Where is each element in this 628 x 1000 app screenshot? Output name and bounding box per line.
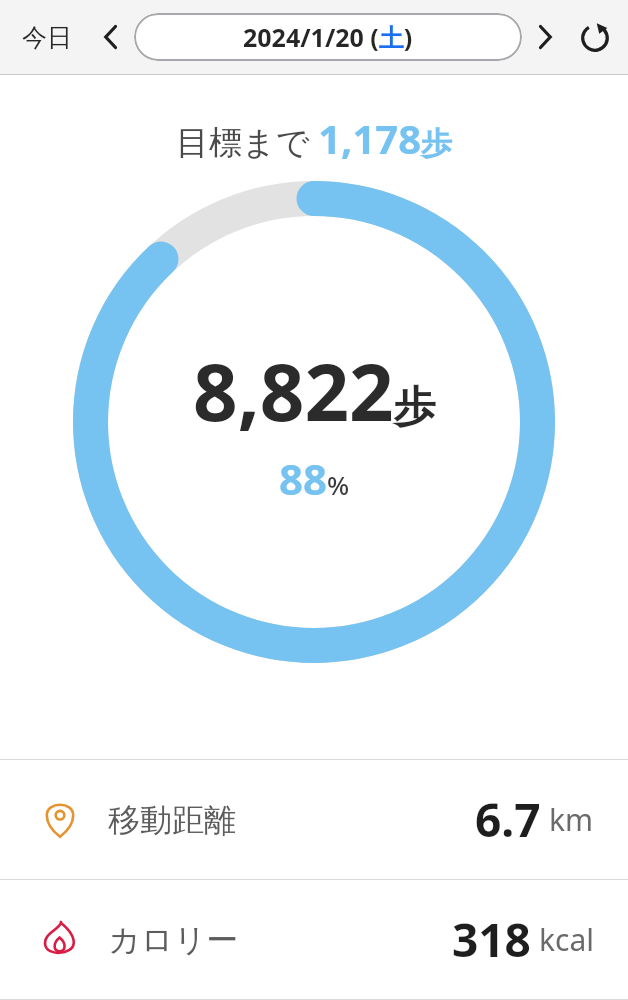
button[interactable]: 移動距離: [0, 760, 628, 879]
staticText: 移動距離: [108, 800, 236, 840]
button[interactable]: カロリー: [0, 880, 628, 999]
staticText: 2024/1/20 (土): [243, 20, 413, 54]
button[interactable]: 前の日: [90, 16, 132, 58]
staticText: 8,822歩: [193, 338, 436, 444]
staticText: 88%: [279, 450, 350, 507]
staticText: カロリー: [108, 920, 239, 960]
staticText: 6.7: [475, 788, 541, 851]
staticText: 目標まで 1,178歩: [176, 111, 453, 165]
staticText: kcal: [539, 919, 594, 960]
staticText: 318: [452, 908, 531, 971]
staticText: km: [549, 799, 594, 840]
staticText: 今日: [22, 22, 72, 53]
button[interactable]: 更新: [572, 14, 618, 60]
button[interactable]: 今日: [14, 12, 80, 63]
button[interactable]: 次の日: [524, 16, 566, 58]
button[interactable]: 2024/1/20 (土): [134, 13, 522, 61]
